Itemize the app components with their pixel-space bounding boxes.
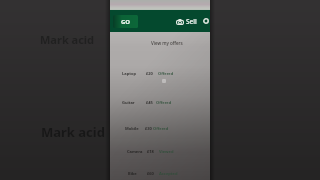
button[interactable] [110,119,210,137]
button[interactable]: Sell [176,17,197,26]
button[interactable]: Home [113,15,138,28]
staticText: Bike [128,171,137,176]
staticText: £18 [147,149,154,154]
staticText: Offered [153,126,169,131]
staticText: £20 [146,71,153,76]
button[interactable] [110,64,210,82]
staticText: Camera [127,149,143,154]
staticText: Laptop [122,71,136,76]
staticText: Accepted [159,171,178,176]
staticText: Guitar [122,100,135,105]
staticText: Mark acid [41,123,105,141]
staticText: View my offers [151,40,183,46]
staticText: £45 [146,100,153,105]
button[interactable]: View my offers [150,38,184,48]
button[interactable] [110,142,210,160]
button[interactable] [110,164,210,180]
staticText: £30 [145,126,152,131]
staticText: £60 [147,171,154,176]
staticText: Offered [158,71,174,76]
staticText: Mark acid [40,32,95,47]
staticText: Mobile [125,126,139,131]
staticText: Offered [156,100,172,105]
staticText: Viewed [159,149,174,154]
staticText: GO [121,18,131,26]
button[interactable] [110,93,210,111]
staticText: Sell [186,17,197,26]
button[interactable]: My account [203,18,209,24]
